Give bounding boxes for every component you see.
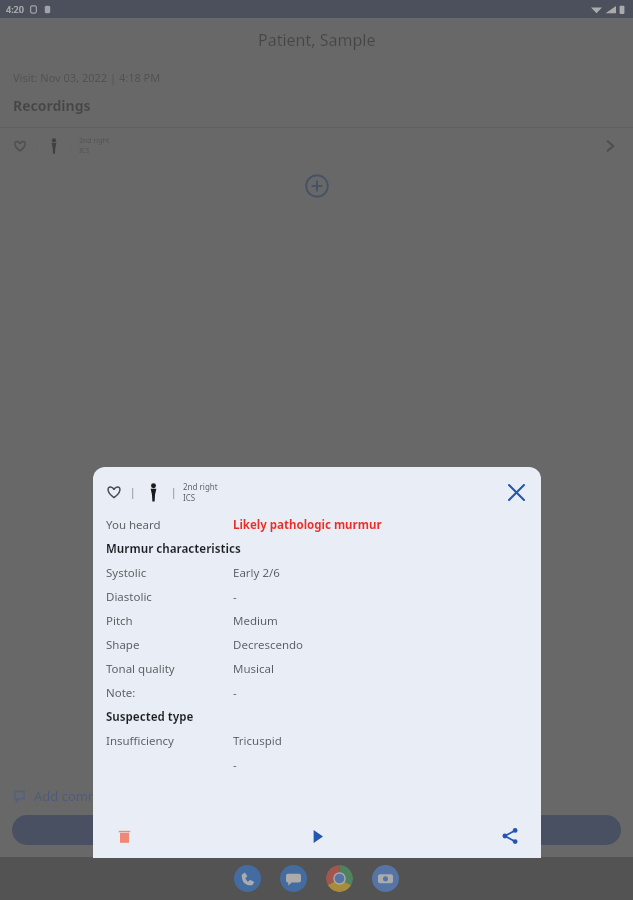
button[interactable]: Camera [372, 865, 399, 892]
staticText: Add comment [34, 787, 121, 805]
staticText: Insufficiency [106, 733, 174, 749]
staticText: | [130, 485, 136, 499]
staticText: Pitch [106, 613, 133, 629]
staticText: Likely pathologic murmur [233, 517, 382, 533]
staticText: Medium [233, 613, 278, 629]
staticText: - [233, 685, 237, 701]
staticText: Musical [233, 661, 274, 677]
staticText: 4:20 [6, 3, 24, 15]
staticText: Diastolic [106, 589, 152, 605]
staticText: Systolic [106, 565, 147, 581]
staticText: Visit: Nov 03, 2022 | 4:18 PM [13, 70, 161, 85]
button[interactable]: Chrome [326, 865, 353, 892]
other: Open recording [600, 136, 620, 156]
staticText: Suspected type [106, 709, 194, 725]
staticText: 2nd right [183, 481, 218, 492]
button[interactable]: Close [503, 479, 529, 505]
button[interactable] [12, 815, 621, 845]
staticText: - [233, 589, 237, 605]
staticText: Murmur characteristics [106, 541, 241, 557]
staticText: - [233, 757, 237, 773]
staticText: 2nd right [79, 136, 110, 146]
button[interactable]: Add recording [305, 174, 329, 198]
button[interactable]: Delete [111, 823, 137, 849]
button[interactable]: Messages [280, 865, 307, 892]
staticText: ICS [79, 146, 90, 156]
staticText: | [171, 485, 177, 499]
staticText: Early 2/6 [233, 565, 280, 581]
staticText: Tonal quality [106, 661, 175, 677]
button[interactable]: Play [304, 823, 330, 849]
staticText: ICS [183, 492, 196, 503]
staticText: You heard [106, 517, 161, 533]
staticText: Tricuspid [233, 733, 282, 749]
staticText: Note: [106, 685, 136, 701]
staticText: Recordings [13, 96, 91, 115]
button[interactable]: Phone [234, 865, 261, 892]
button[interactable]: Add comment [0, 787, 633, 815]
button[interactable]: Share [497, 823, 523, 849]
staticText: Decrescendo [233, 637, 304, 653]
staticText: Shape [106, 637, 140, 653]
staticText: Patient, Sample [258, 29, 376, 51]
